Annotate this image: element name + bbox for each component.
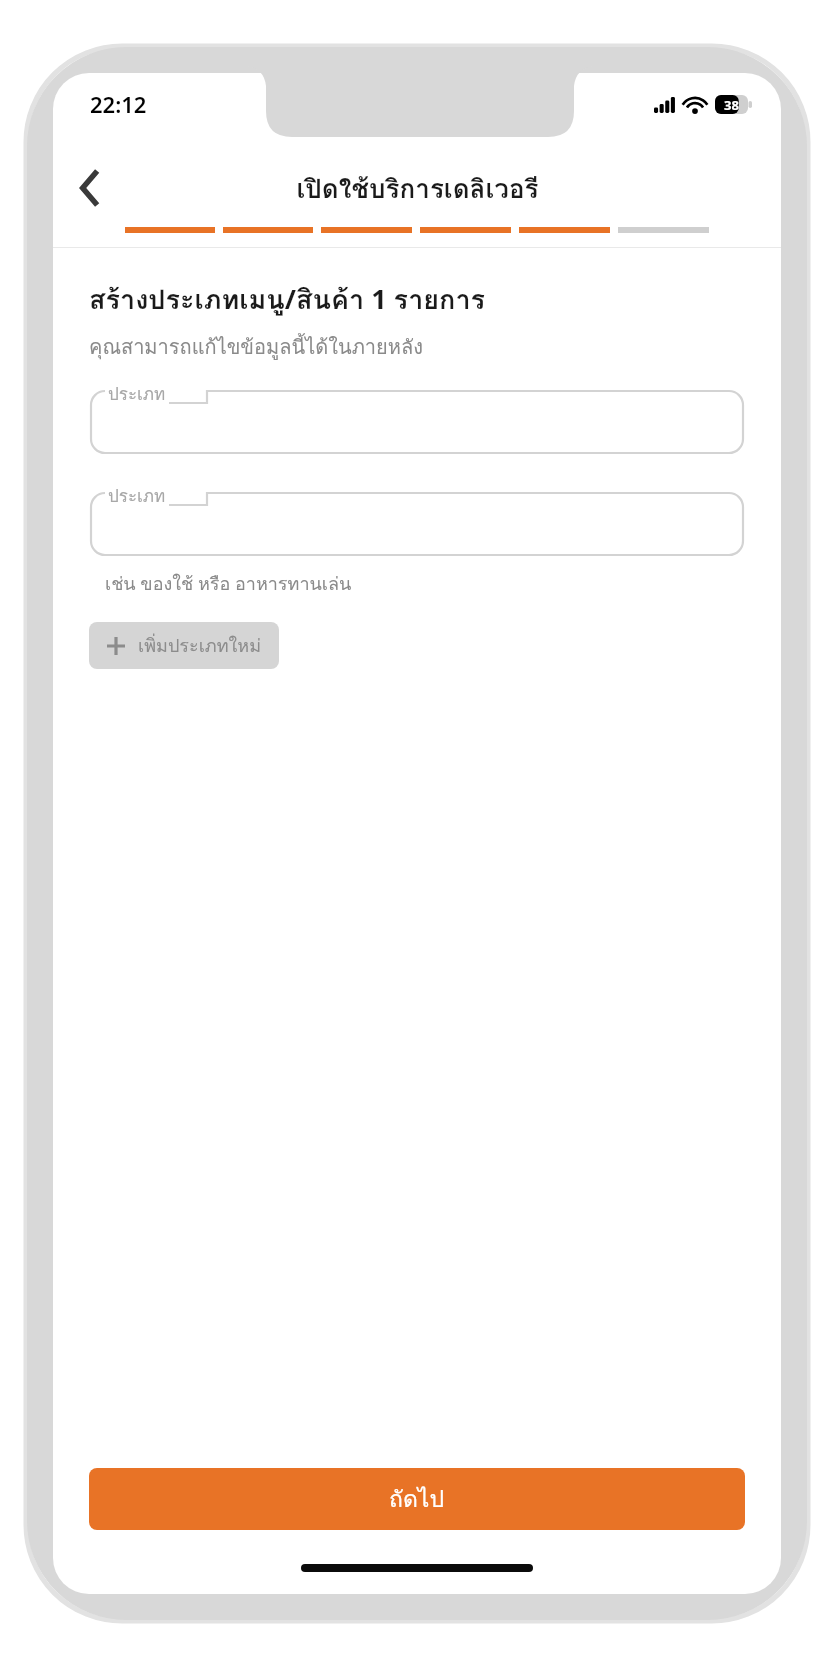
button[interactable]: ประเภท <box>89 491 745 557</box>
staticText: คุณสามารถแก้ไขข้อมูลนี้ได้ในภายหลัง <box>89 331 423 363</box>
button[interactable]: เพิ่มประเภทใหม่ <box>89 622 279 669</box>
staticText: ถัดไป <box>389 1481 445 1518</box>
staticText: 22:12 <box>90 89 147 119</box>
staticText: เปิดใช้บริการเดลิเวอรี <box>296 168 539 209</box>
staticText: เช่น ของใช้ หรือ อาหารทานเล่น <box>105 569 352 598</box>
staticText: 38 <box>724 96 739 114</box>
staticText: ประเภท <box>108 482 166 509</box>
staticText: เพิ่มประเภทใหม่ <box>138 631 262 660</box>
button[interactable]: ถัดไป <box>89 1468 745 1530</box>
staticText: ประเภท <box>108 380 166 407</box>
staticText: สร้างประเภทเมนู/สินค้า 1 รายการ <box>89 278 486 321</box>
button[interactable]: ประเภท <box>89 389 745 455</box>
button[interactable]: Back <box>65 163 117 213</box>
